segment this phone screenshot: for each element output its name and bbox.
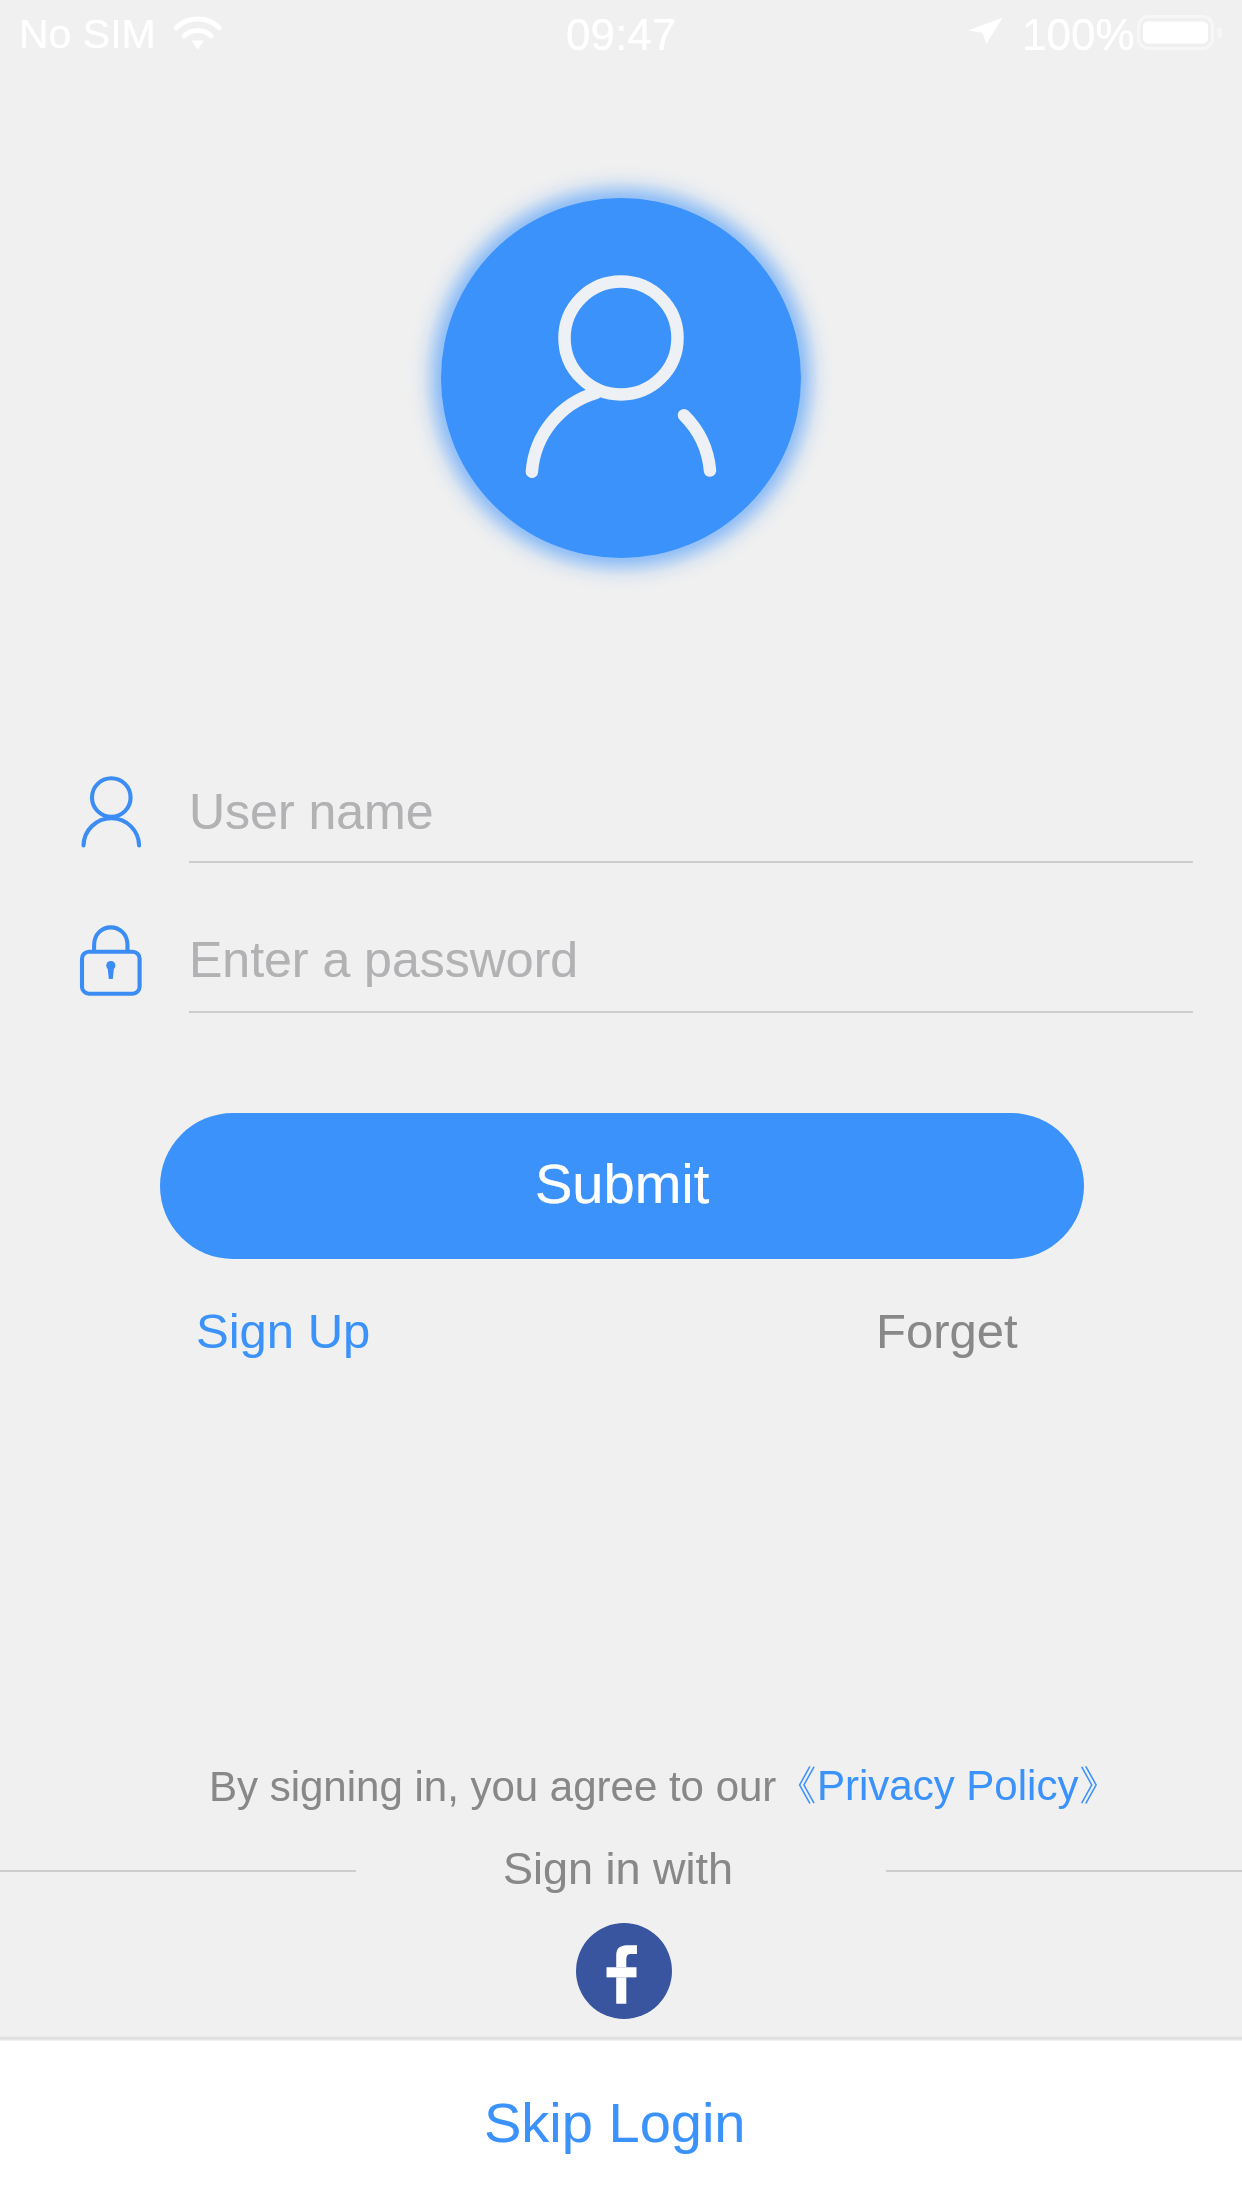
staticText: 《Privacy Policy》 <box>775 1760 1121 1813</box>
button[interactable]: Sign in with Facebook <box>576 1923 672 2019</box>
button[interactable]: Sign Up <box>196 1271 371 1391</box>
button[interactable]: 《Privacy Policy》 <box>775 1726 1121 1846</box>
button[interactable]: Skip Login <box>0 2041 1242 2208</box>
staticText: No SIM <box>19 11 156 57</box>
staticText: 09:47 <box>566 10 677 59</box>
staticText: 100% <box>1022 10 1135 59</box>
staticText: Enter a password <box>189 932 579 988</box>
staticText: Sign in with <box>503 1843 734 1893</box>
button[interactable]: Forget <box>876 1271 1018 1391</box>
staticText: Sign Up <box>196 1304 371 1359</box>
staticText: Skip Login <box>484 2091 746 2154</box>
staticText: Submit <box>535 1152 710 1215</box>
button[interactable]: Submit <box>160 1113 1084 1259</box>
staticText: User name <box>189 784 434 840</box>
staticText: By signing in, you agree to our <box>209 1763 777 1810</box>
staticText: Forget <box>876 1304 1018 1359</box>
